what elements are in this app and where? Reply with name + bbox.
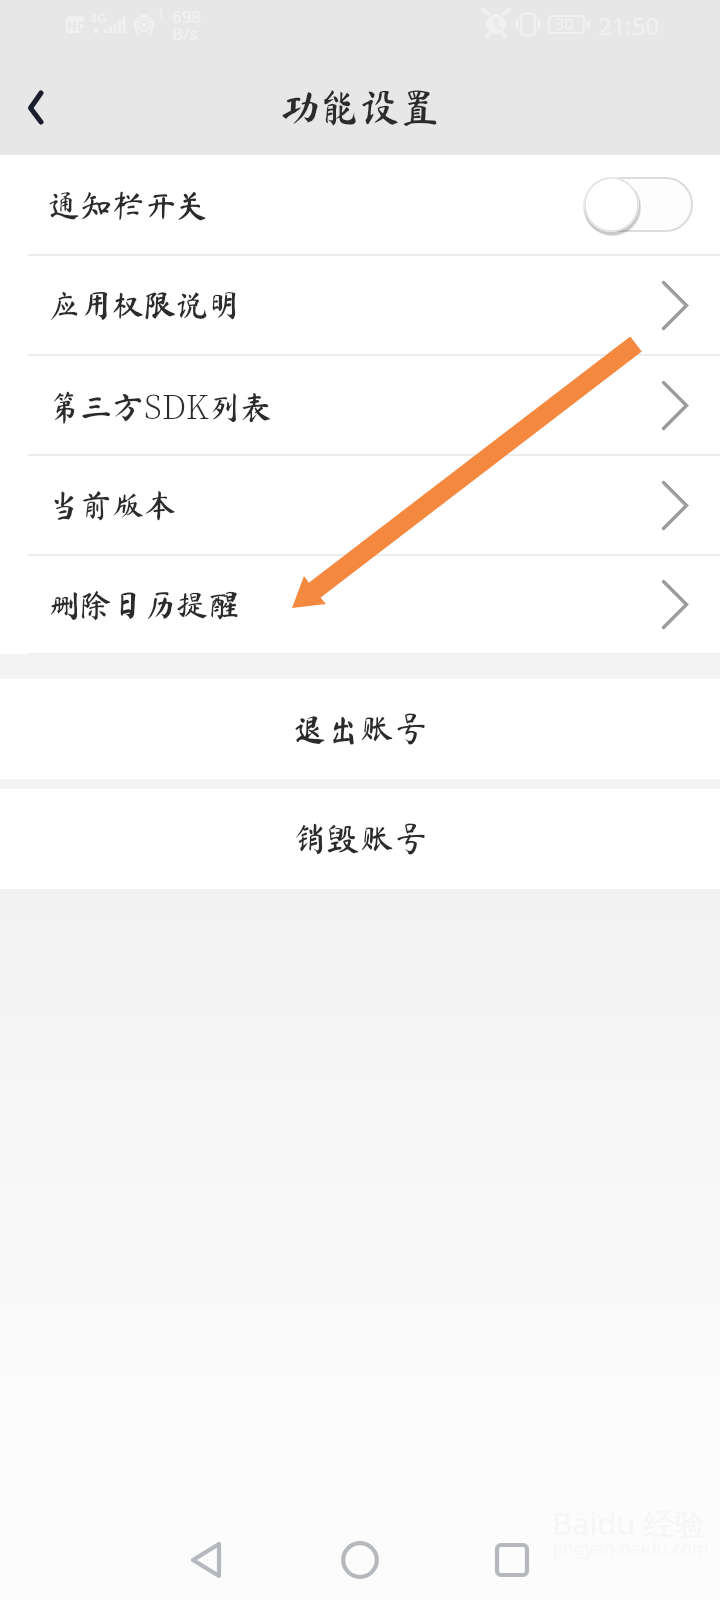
staticText: 删除日历提醒 <box>48 589 241 621</box>
staticText: 30 <box>555 13 574 35</box>
staticText: 第三方SDK列表 <box>48 382 273 428</box>
staticText: 应用权限说明 <box>48 289 241 321</box>
button[interactable]: 通知栏开关 <box>0 155 720 254</box>
button[interactable]: 应用权限说明 <box>0 256 720 354</box>
button[interactable]: 退出账号 <box>0 679 720 779</box>
staticText: 通知栏开关 <box>48 189 209 221</box>
button[interactable]: Home <box>320 1520 400 1600</box>
button[interactable]: 删除日历提醒 <box>0 556 720 653</box>
button[interactable]: 第三方SDK列表 <box>0 356 720 454</box>
staticText: 21:50 <box>598 9 660 42</box>
button[interactable]: Back <box>166 1520 246 1600</box>
staticText: 退出账号 <box>292 711 428 745</box>
staticText: 当前版本 <box>48 489 177 521</box>
button[interactable]: Recents <box>472 1520 552 1600</box>
staticText: HD <box>67 17 87 35</box>
staticText: 4G <box>90 9 107 27</box>
staticText: 698 B/s <box>172 5 202 45</box>
button[interactable]: 销毁账号 <box>0 789 720 889</box>
staticText: 销毁账号 <box>292 821 428 855</box>
staticText: 功能设置 <box>280 87 440 127</box>
button[interactable]: Back <box>0 60 72 155</box>
button[interactable]: 当前版本 <box>0 456 720 554</box>
